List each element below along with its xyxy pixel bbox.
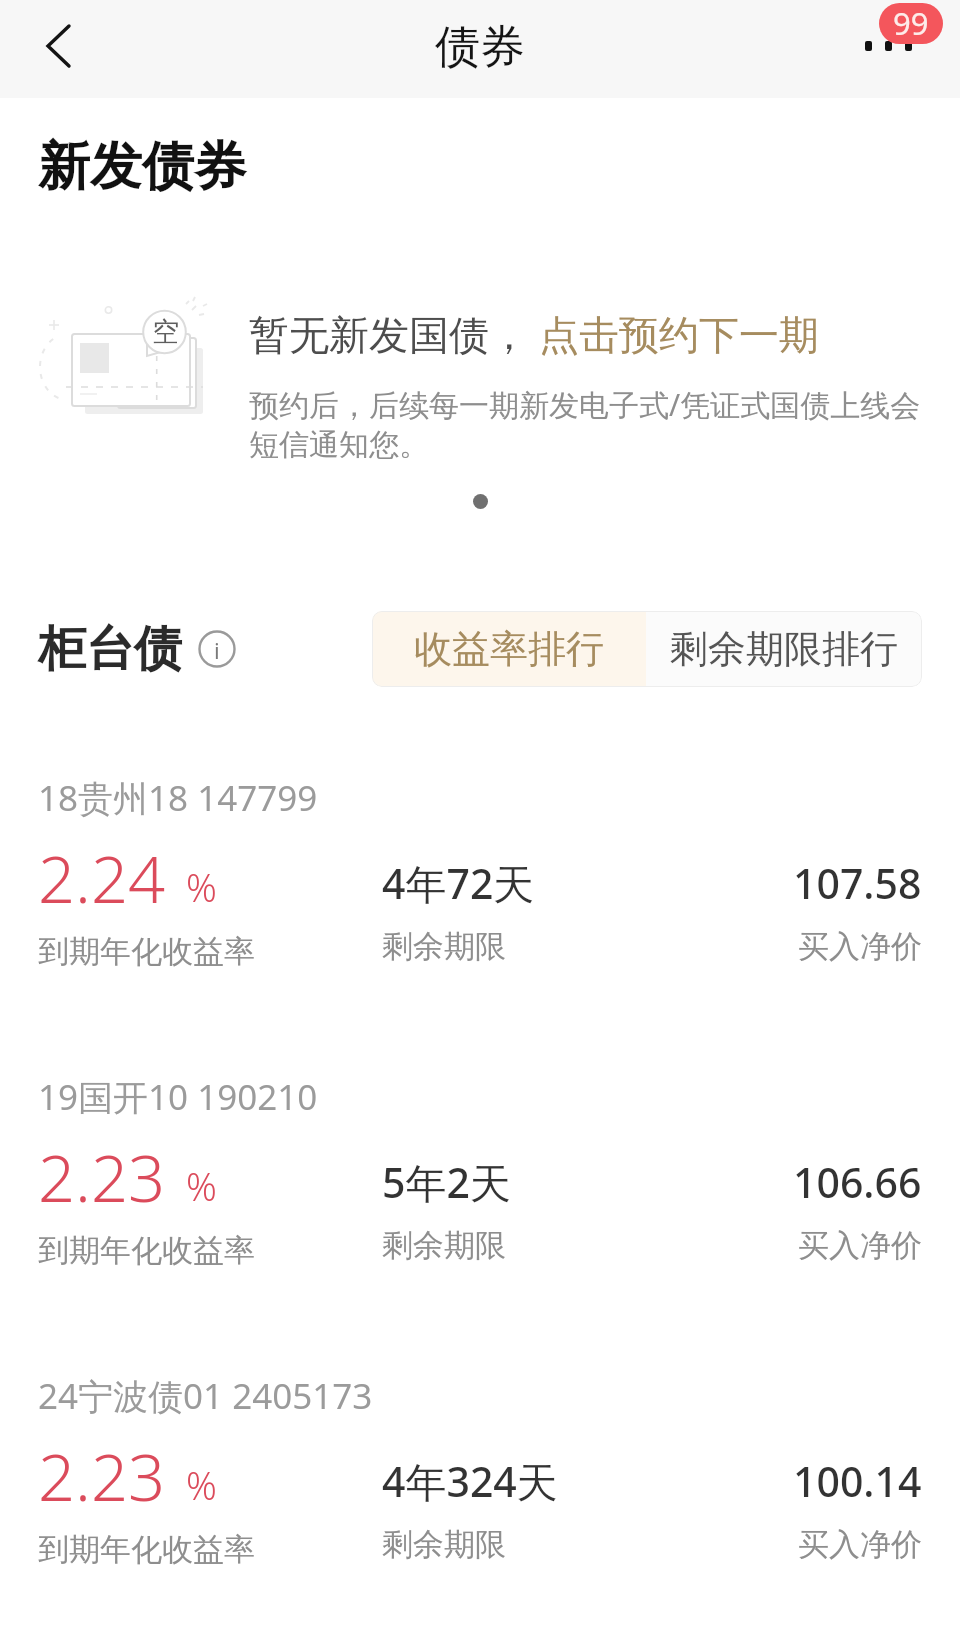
button[interactable]: Info — [198, 630, 236, 668]
staticText: 4年72天 — [382, 855, 535, 911]
staticText: 2.23 — [38, 1432, 166, 1521]
button[interactable]: 点击预约下一期 — [539, 310, 819, 360]
staticText: 100.14 — [793, 1453, 922, 1509]
staticText: 买入净价 — [798, 1226, 922, 1265]
staticText: 4年324天 — [382, 1453, 558, 1509]
staticText: % — [186, 861, 217, 913]
staticText: 剩余期限 — [382, 1525, 506, 1564]
button[interactable]: 剩余期限排行 — [646, 611, 922, 687]
staticText: 点击预约下一期 — [539, 310, 819, 360]
staticText: 18贵州18 147799 — [38, 774, 318, 822]
staticText: 剩余期限 — [382, 1226, 506, 1265]
button[interactable]: 18贵州18 147799 — [38, 774, 922, 971]
staticText: 剩余期限排行 — [670, 625, 898, 673]
staticText: 暂无新发国债， — [249, 310, 529, 360]
button[interactable]: 19国开10 190210 — [38, 1073, 922, 1270]
staticText: 5年2天 — [382, 1154, 511, 1210]
staticText: 新发债券 — [38, 134, 246, 200]
staticText: 预约后，后续每一期新发电子式/凭证式国债上线会 短信通知您。 — [249, 384, 921, 464]
staticText: 99 — [893, 3, 929, 43]
staticText: 24宁波债01 2405173 — [38, 1372, 373, 1420]
staticText: % — [186, 1459, 217, 1511]
staticText: 到期年化收益率 — [38, 1231, 255, 1270]
button[interactable]: More options — [840, 0, 960, 98]
staticText: 空 — [152, 315, 179, 349]
staticText: 柜台债 — [38, 619, 182, 679]
staticText: 2.24 — [38, 834, 166, 923]
button[interactable]: 收益率排行 — [372, 611, 646, 687]
staticText: % — [186, 1160, 217, 1212]
staticText: 到期年化收益率 — [38, 932, 255, 971]
button[interactable]: 24宁波债01 2405173 — [38, 1372, 922, 1569]
staticText: 到期年化收益率 — [38, 1530, 255, 1569]
staticText: i — [214, 635, 220, 665]
staticText: 买入净价 — [798, 1525, 922, 1564]
staticText: 债券 — [435, 19, 525, 76]
staticText: 买入净价 — [798, 927, 922, 966]
staticText: 剩余期限 — [382, 927, 506, 966]
staticText: 收益率排行 — [414, 625, 604, 673]
staticText: 19国开10 190210 — [38, 1073, 318, 1121]
staticText: 106.66 — [793, 1154, 922, 1210]
staticText: 107.58 — [793, 855, 922, 911]
staticText: 2.23 — [38, 1133, 166, 1222]
button[interactable]: Back — [0, 0, 110, 98]
